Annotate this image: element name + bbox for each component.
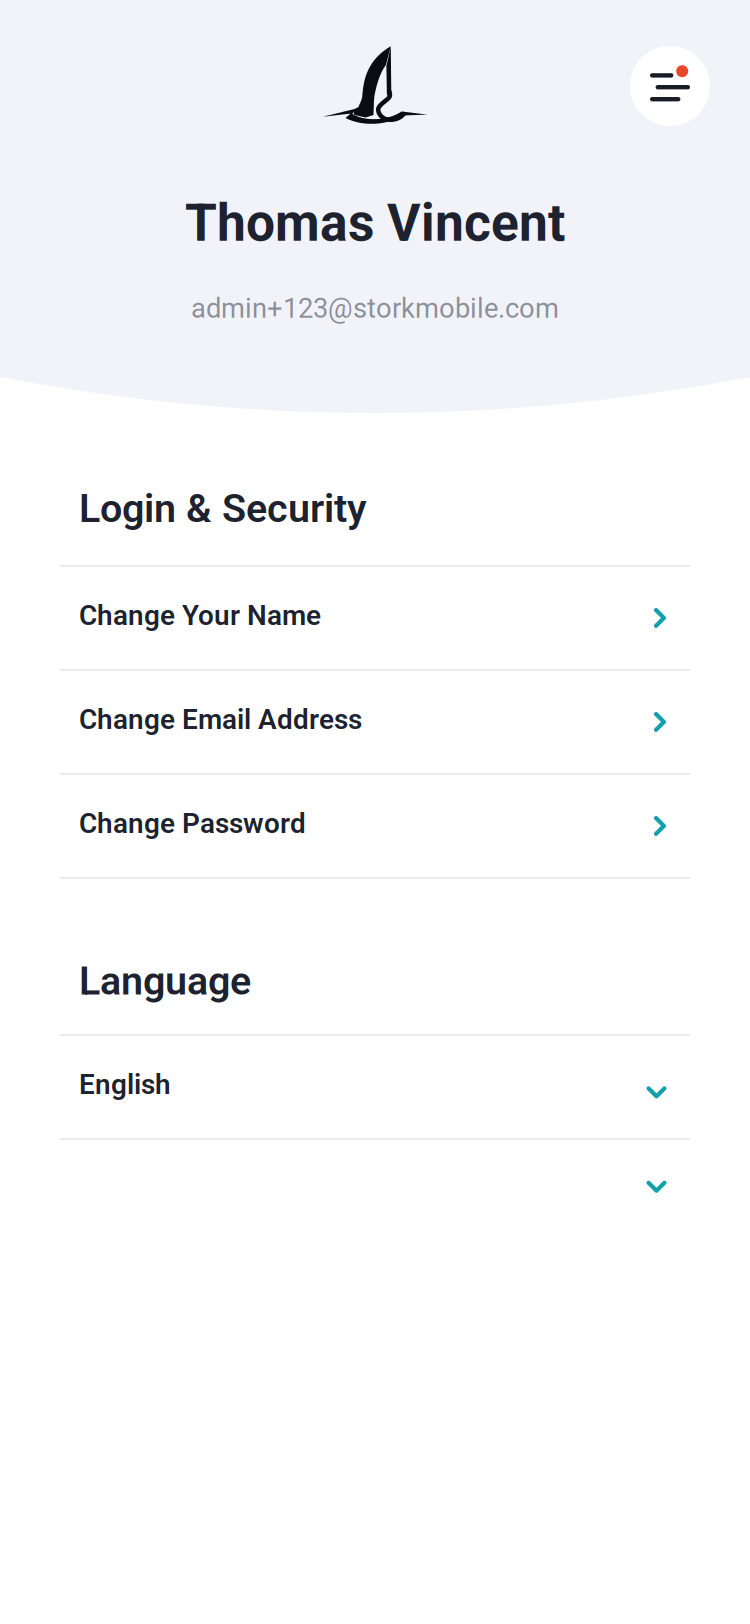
button[interactable] (0, 1140, 750, 1234)
staticText: admin+123@storkmobile.com (191, 292, 559, 324)
button[interactable]: Change Your Name (0, 567, 750, 669)
staticText: Login & Security (79, 485, 367, 531)
staticText: Change Your Name (79, 599, 321, 632)
button[interactable]: English (0, 1036, 750, 1138)
staticText: Change Password (79, 807, 306, 840)
staticText: English (79, 1068, 171, 1101)
staticText: Language (79, 958, 251, 1004)
button[interactable]: Change Email Address (0, 671, 750, 773)
button[interactable]: Menu (630, 46, 710, 126)
button[interactable]: Change Password (0, 775, 750, 877)
staticText: Change Email Address (79, 703, 362, 736)
staticText: Thomas Vincent (185, 193, 565, 253)
